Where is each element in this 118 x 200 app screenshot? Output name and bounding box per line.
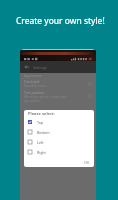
button[interactable]: Card style bbox=[20, 79, 96, 88]
staticText: Rounded corners bbox=[24, 84, 47, 88]
staticText: Appearance bbox=[24, 74, 42, 78]
button[interactable]: OK bbox=[80, 158, 94, 167]
staticText: Card style bbox=[24, 79, 40, 84]
staticText: Please select: bbox=[28, 111, 55, 117]
staticText: Top bbox=[37, 120, 44, 125]
button[interactable]: Top bbox=[24, 117, 94, 127]
button[interactable]: Text position bbox=[20, 90, 96, 102]
button[interactable]: Left bbox=[24, 137, 94, 147]
button[interactable]: Back bbox=[24, 64, 30, 70]
staticText: Bottom bbox=[37, 130, 50, 135]
staticText: Where the caption is shown over your pic… bbox=[24, 95, 67, 102]
staticText: Text position bbox=[24, 90, 45, 95]
staticText: Create your own style! bbox=[16, 15, 105, 27]
button[interactable]: Right bbox=[24, 147, 94, 157]
staticText: Left bbox=[37, 140, 44, 145]
staticText: OK bbox=[84, 160, 90, 165]
staticText: Settings bbox=[33, 65, 47, 70]
button[interactable]: Bottom bbox=[24, 127, 94, 137]
staticText: Right bbox=[37, 150, 46, 155]
